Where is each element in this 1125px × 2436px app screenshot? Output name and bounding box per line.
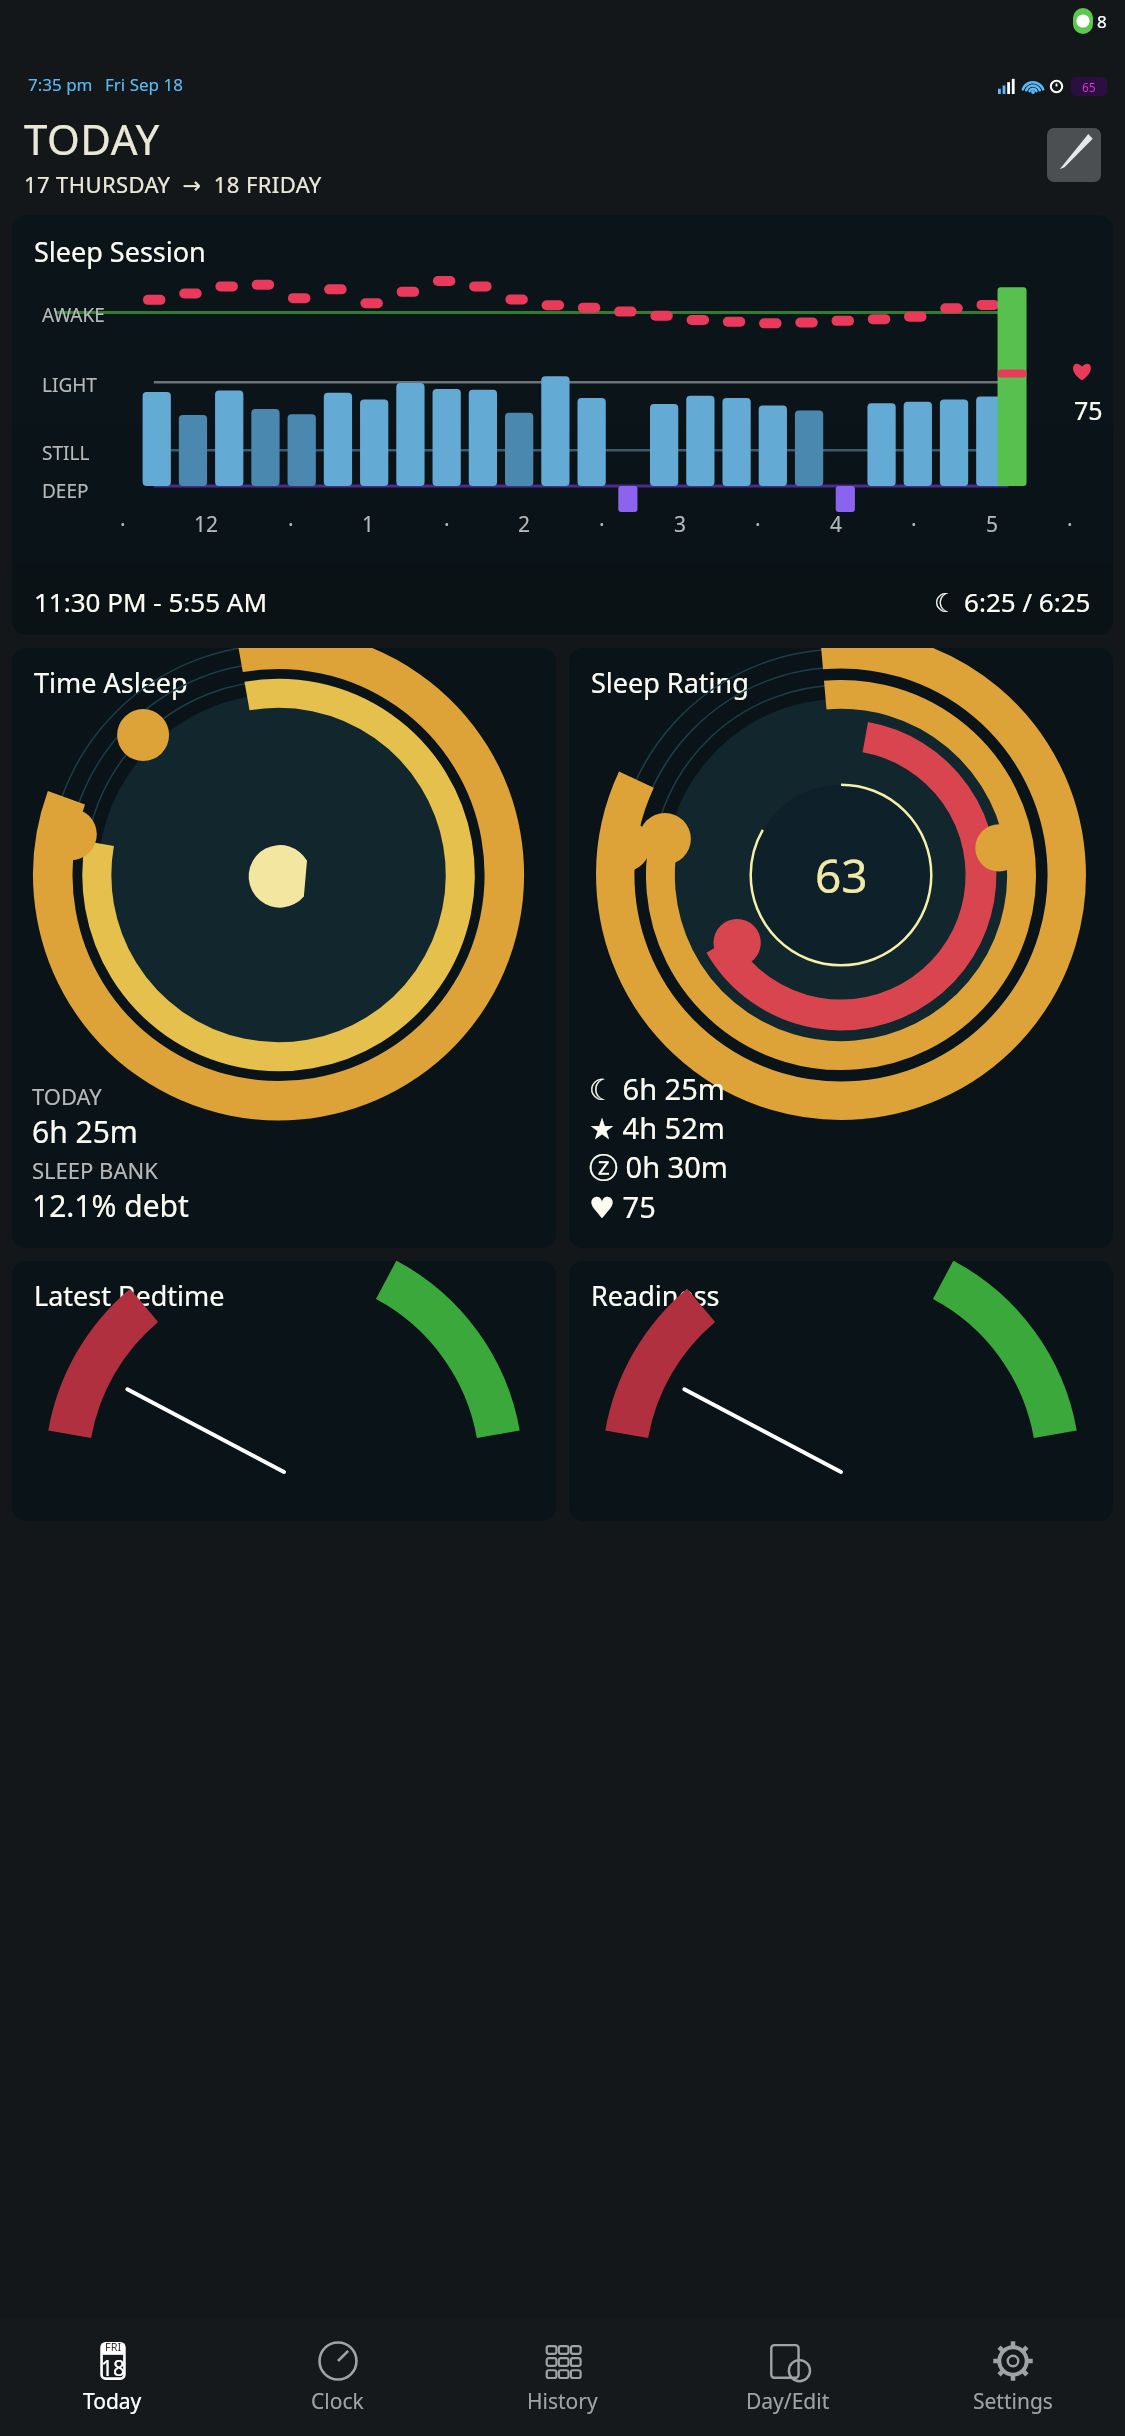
staticText: · (755, 510, 761, 539)
staticText: · (444, 510, 450, 539)
staticText: DEEP (42, 478, 89, 504)
button[interactable]: Settings (900, 2318, 1125, 2436)
staticText: 8 (1097, 10, 1107, 33)
staticText: Readiness (591, 1277, 720, 1314)
staticText: Settings (973, 2387, 1053, 2416)
staticText: AWAKE (42, 302, 105, 328)
button[interactable]: Time Asleep (12, 648, 556, 1248)
staticText: SLEEP BANK (32, 1155, 158, 1185)
button[interactable]: Clock (225, 2318, 450, 2436)
staticText: ☾ 6h 25m (589, 1069, 725, 1108)
staticText: 1 (362, 510, 375, 539)
button[interactable]: Latest Bedtime (12, 1261, 556, 1521)
staticText: TODAY (32, 1081, 102, 1111)
staticText: Sleep Rating (591, 664, 749, 701)
staticText: 75 (1074, 393, 1103, 427)
button[interactable]: Sleep Rating (569, 648, 1113, 1248)
staticText: 4 (830, 510, 843, 539)
button[interactable]: Edit (1047, 128, 1101, 182)
staticText: 12.1% debt (32, 1185, 189, 1226)
staticText: Day/Edit (746, 2387, 830, 2416)
button[interactable]: Sleep Session (12, 215, 1113, 635)
staticText: · (120, 510, 126, 539)
staticText: · (1067, 510, 1073, 539)
staticText: ☾ 6:25 / 6:25 (934, 584, 1091, 619)
staticText: 6h 25m (32, 1111, 138, 1152)
button[interactable]: Day/Edit (675, 2318, 900, 2436)
staticText: TODAY (24, 110, 160, 167)
button[interactable]: History (450, 2318, 675, 2436)
staticText: ★ 4h 52m (589, 1108, 725, 1147)
staticText: STILL (42, 440, 90, 466)
button[interactable]: FRI (0, 2318, 225, 2436)
staticText: Fri Sep 18 (105, 73, 183, 96)
staticText: 5 (986, 510, 999, 539)
staticText: Sleep Session (34, 233, 206, 270)
staticText: · (911, 510, 917, 539)
staticText: LIGHT (42, 372, 97, 398)
staticText: Latest Bedtime (34, 1277, 225, 1314)
staticText: Today (83, 2387, 142, 2416)
staticText: 7:35 pm (28, 73, 93, 96)
staticText: 65 (1082, 79, 1096, 95)
staticText: 17 THURSDAY → 18 FRIDAY (24, 169, 322, 199)
staticText: Clock (311, 2387, 364, 2416)
staticText: 63 (815, 844, 868, 907)
staticText: History (527, 2387, 598, 2416)
staticText: ⓩ 0h 30m (589, 1147, 728, 1187)
staticText: 2 (518, 510, 531, 539)
staticText: ♥ 75 (589, 1187, 656, 1226)
staticText: · (599, 510, 605, 539)
staticText: 3 (674, 510, 687, 539)
staticText: 11:30 PM - 5:55 AM (34, 584, 267, 619)
staticText: 18 (101, 2354, 126, 2383)
staticText: 12 (194, 510, 219, 539)
staticText: · (288, 510, 294, 539)
staticText: FRI (105, 2339, 122, 2354)
staticText: Time Asleep (34, 664, 188, 701)
button[interactable]: Readiness (569, 1261, 1113, 1521)
